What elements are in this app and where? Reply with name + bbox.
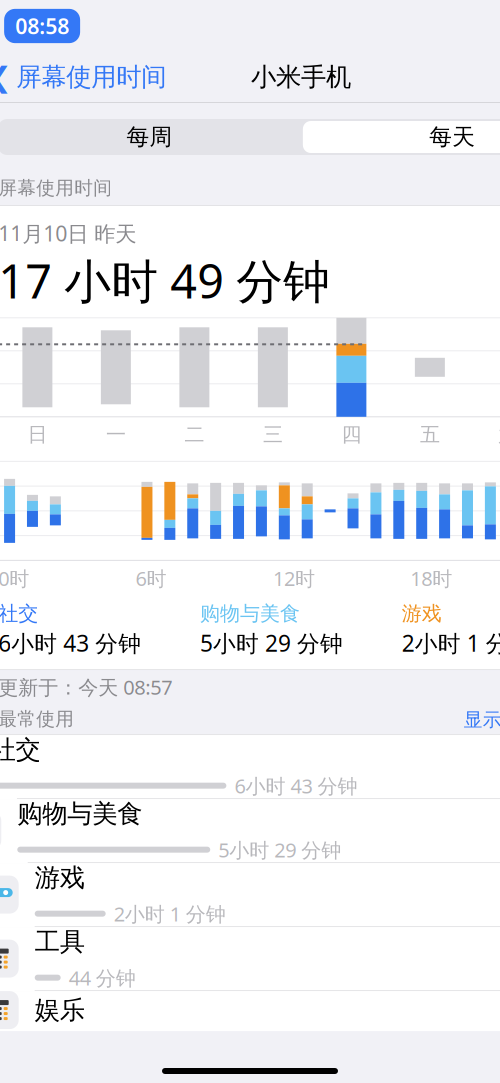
staticText: 每天 xyxy=(429,123,475,151)
staticText: 社交 xyxy=(0,601,38,626)
staticText: 购物与美食 xyxy=(17,798,142,829)
staticText: 游戏 xyxy=(402,601,442,626)
button[interactable]: 每周 xyxy=(0,121,301,153)
staticText: 三 xyxy=(263,422,283,447)
staticText: 6时 xyxy=(135,565,166,591)
staticText: 44 分钟 xyxy=(69,964,136,991)
staticText: 一 xyxy=(106,422,126,447)
staticText: 2小时 1 分钟 xyxy=(402,628,500,658)
staticText: 0时 xyxy=(0,565,29,591)
button[interactable]: 每天 xyxy=(303,121,500,153)
staticText: 6小时 43 分钟 xyxy=(0,628,141,658)
staticText: 屏幕使用时间 xyxy=(16,61,166,92)
staticText: 6小时 43 分钟 xyxy=(234,772,357,799)
staticText: 娱乐 xyxy=(35,994,85,1026)
staticText: 小米手机 xyxy=(251,61,351,92)
staticText: 更新于：今天 08:57 xyxy=(0,674,172,700)
staticText: 5小时 29 分钟 xyxy=(200,628,343,658)
staticText: 四 xyxy=(341,422,361,447)
staticText: 每周 xyxy=(126,123,172,151)
staticText: 二 xyxy=(184,422,204,447)
staticText: 最常使用 xyxy=(0,708,74,730)
button[interactable]: 游戏 xyxy=(0,863,500,927)
button[interactable]: 显示 App 与网站 xyxy=(464,707,500,731)
staticText: 社交 xyxy=(0,734,40,765)
staticText: 屏幕使用时间 xyxy=(0,176,112,199)
staticText: ❮ xyxy=(0,61,11,93)
staticText: 日 xyxy=(27,422,47,447)
button[interactable]: ♥ xyxy=(0,735,500,799)
staticText: 购物与美食 xyxy=(200,601,300,626)
staticText: 5小时 29 分钟 xyxy=(218,836,341,863)
staticText: 08:58 xyxy=(15,12,69,40)
button[interactable]: 购物与美食 xyxy=(0,799,500,863)
staticText: 2小时 1 分钟 xyxy=(114,900,226,927)
staticText: 显示 App 与网站 xyxy=(464,707,500,731)
staticText: 11月10日 昨天 xyxy=(0,219,136,247)
staticText: 五 xyxy=(420,422,440,447)
staticText: 游戏 xyxy=(35,862,85,893)
staticText: 18时 xyxy=(410,565,452,591)
button[interactable]: ❮ xyxy=(0,53,166,101)
staticText: 12时 xyxy=(273,565,315,591)
staticText: 六 xyxy=(498,422,500,447)
staticText: 工具 xyxy=(35,926,85,957)
staticText: 17 小时 49 分钟 xyxy=(0,249,330,311)
button[interactable]: 工具 xyxy=(0,927,500,991)
